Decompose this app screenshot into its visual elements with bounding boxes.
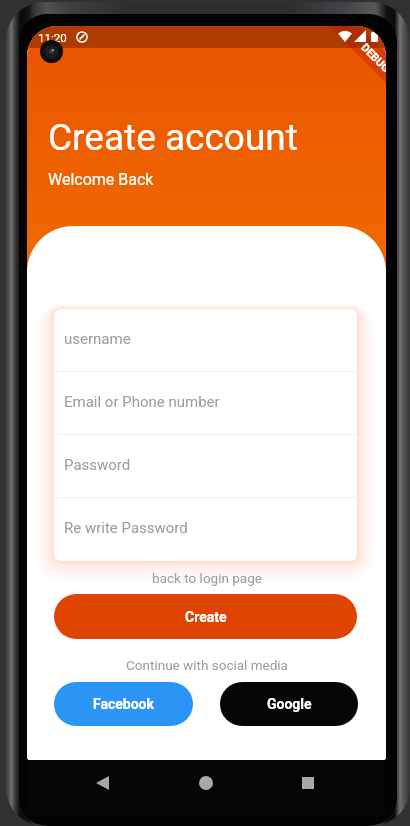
- button[interactable]: Home: [188, 765, 224, 801]
- button[interactable]: Back: [84, 765, 120, 801]
- button[interactable]: username: [54, 309, 357, 372]
- staticText: Continue with social media: [126, 657, 288, 673]
- staticText: Facebook: [93, 696, 154, 712]
- button[interactable]: back to login page: [27, 568, 386, 588]
- button[interactable]: Recent apps: [290, 765, 326, 801]
- staticText: username: [64, 330, 131, 348]
- button[interactable]: Password: [54, 435, 357, 498]
- staticText: Welcome Back: [48, 170, 154, 189]
- staticText: Create account: [48, 116, 298, 159]
- staticText: 11:20: [38, 31, 67, 44]
- button[interactable]: Facebook: [54, 682, 193, 726]
- staticText: Password: [64, 456, 131, 474]
- staticText: Re write Password: [64, 519, 188, 537]
- button[interactable]: Google: [220, 682, 358, 726]
- staticText: Email or Phone number: [64, 393, 220, 411]
- button[interactable]: Re write Password: [54, 498, 357, 561]
- button[interactable]: Email or Phone number: [54, 372, 357, 435]
- button[interactable]: Create: [54, 594, 357, 639]
- staticText: back to login page: [152, 570, 262, 586]
- staticText: Google: [267, 696, 312, 712]
- staticText: Create: [185, 609, 227, 625]
- staticText: DEBUG: [358, 41, 386, 76]
